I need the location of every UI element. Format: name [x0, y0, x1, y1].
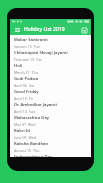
button[interactable]: Bakri Id [10, 126, 91, 139]
button[interactable]: Good Friday [10, 87, 91, 100]
staticText: Maharashtra Day [14, 115, 50, 121]
staticText: April 19, Fri [14, 96, 34, 100]
button[interactable]: Raksha Bandhan [10, 139, 91, 152]
button[interactable]: Holi [10, 61, 91, 74]
staticText: March 21, Thu [14, 70, 39, 74]
button[interactable]: Dr. Ambedkar Jayanti [10, 100, 91, 113]
button[interactable]: Open navigation menu [13, 26, 21, 34]
button[interactable]: Calendar [80, 26, 88, 34]
staticText: June 05, Wed [14, 135, 36, 139]
staticText: January 15, Tue [14, 44, 40, 48]
staticText: February 19, Tue [14, 57, 43, 61]
button[interactable]: Gudi Padwa [10, 74, 91, 87]
staticText: Raksha Bandhan [14, 141, 49, 147]
staticText: May 01, Wed [14, 122, 36, 126]
button[interactable]: Chhatrapati Shivaji Jayanti [10, 48, 91, 61]
staticText: Independence Day [14, 154, 53, 157]
staticText: April 14, Sun [14, 109, 36, 113]
staticText: Bakri Id [14, 128, 30, 134]
staticText: Makar Sankranti [14, 37, 48, 43]
staticText: Good Friday [14, 89, 39, 95]
staticText: April 06, Sat [14, 83, 35, 87]
staticText: Dr. Ambedkar Jayanti [14, 102, 57, 108]
button[interactable]: Independence Day [10, 152, 91, 157]
staticText: Gudi Padwa [14, 76, 39, 82]
staticText: August 15, Thu [14, 148, 40, 152]
staticText: Holiday List 2019 [24, 26, 65, 33]
staticText: Chhatrapati Shivaji Jayanti [14, 50, 68, 56]
button[interactable]: Makar Sankranti [10, 35, 91, 48]
button[interactable]: Maharashtra Day [10, 113, 91, 126]
staticText: Holi [14, 63, 23, 69]
